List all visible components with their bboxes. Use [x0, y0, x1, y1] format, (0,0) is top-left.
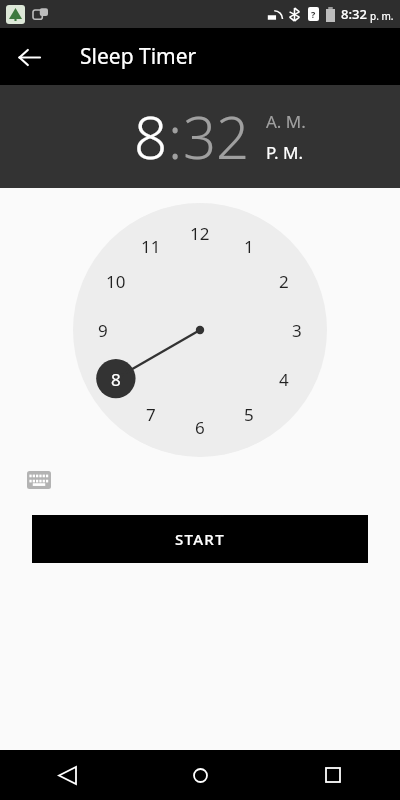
staticText: 10	[106, 270, 126, 293]
staticText: 7	[146, 403, 156, 426]
staticText: 6	[195, 416, 205, 439]
button[interactable]: 32	[183, 97, 250, 176]
button[interactable]: Back	[8, 36, 50, 78]
staticText: Sleep Timer	[80, 42, 197, 71]
button[interactable]: 8	[134, 97, 168, 176]
staticText: 4	[279, 368, 289, 391]
staticText: 2	[279, 270, 289, 293]
staticText: 3	[292, 319, 302, 342]
staticText: START	[175, 529, 225, 549]
staticText: 12	[190, 222, 210, 245]
button[interactable]: P. M.	[266, 141, 304, 164]
staticText: p. m.	[370, 9, 394, 23]
staticText: ?	[311, 8, 316, 20]
button[interactable]: Back	[43, 751, 91, 799]
staticText: 8	[111, 368, 121, 391]
button[interactable]: Switch to text input	[24, 467, 54, 493]
staticText: 11	[141, 235, 161, 258]
button[interactable]: Recents	[309, 751, 357, 799]
button[interactable]: START	[32, 515, 368, 563]
staticText: 9	[98, 319, 108, 342]
staticText: 1	[244, 235, 254, 258]
staticText: 5	[244, 403, 254, 426]
staticText: 8:32	[341, 5, 367, 23]
button[interactable]: Home	[176, 751, 224, 799]
button[interactable]: A. M.	[266, 110, 306, 133]
staticText: :	[168, 97, 183, 176]
